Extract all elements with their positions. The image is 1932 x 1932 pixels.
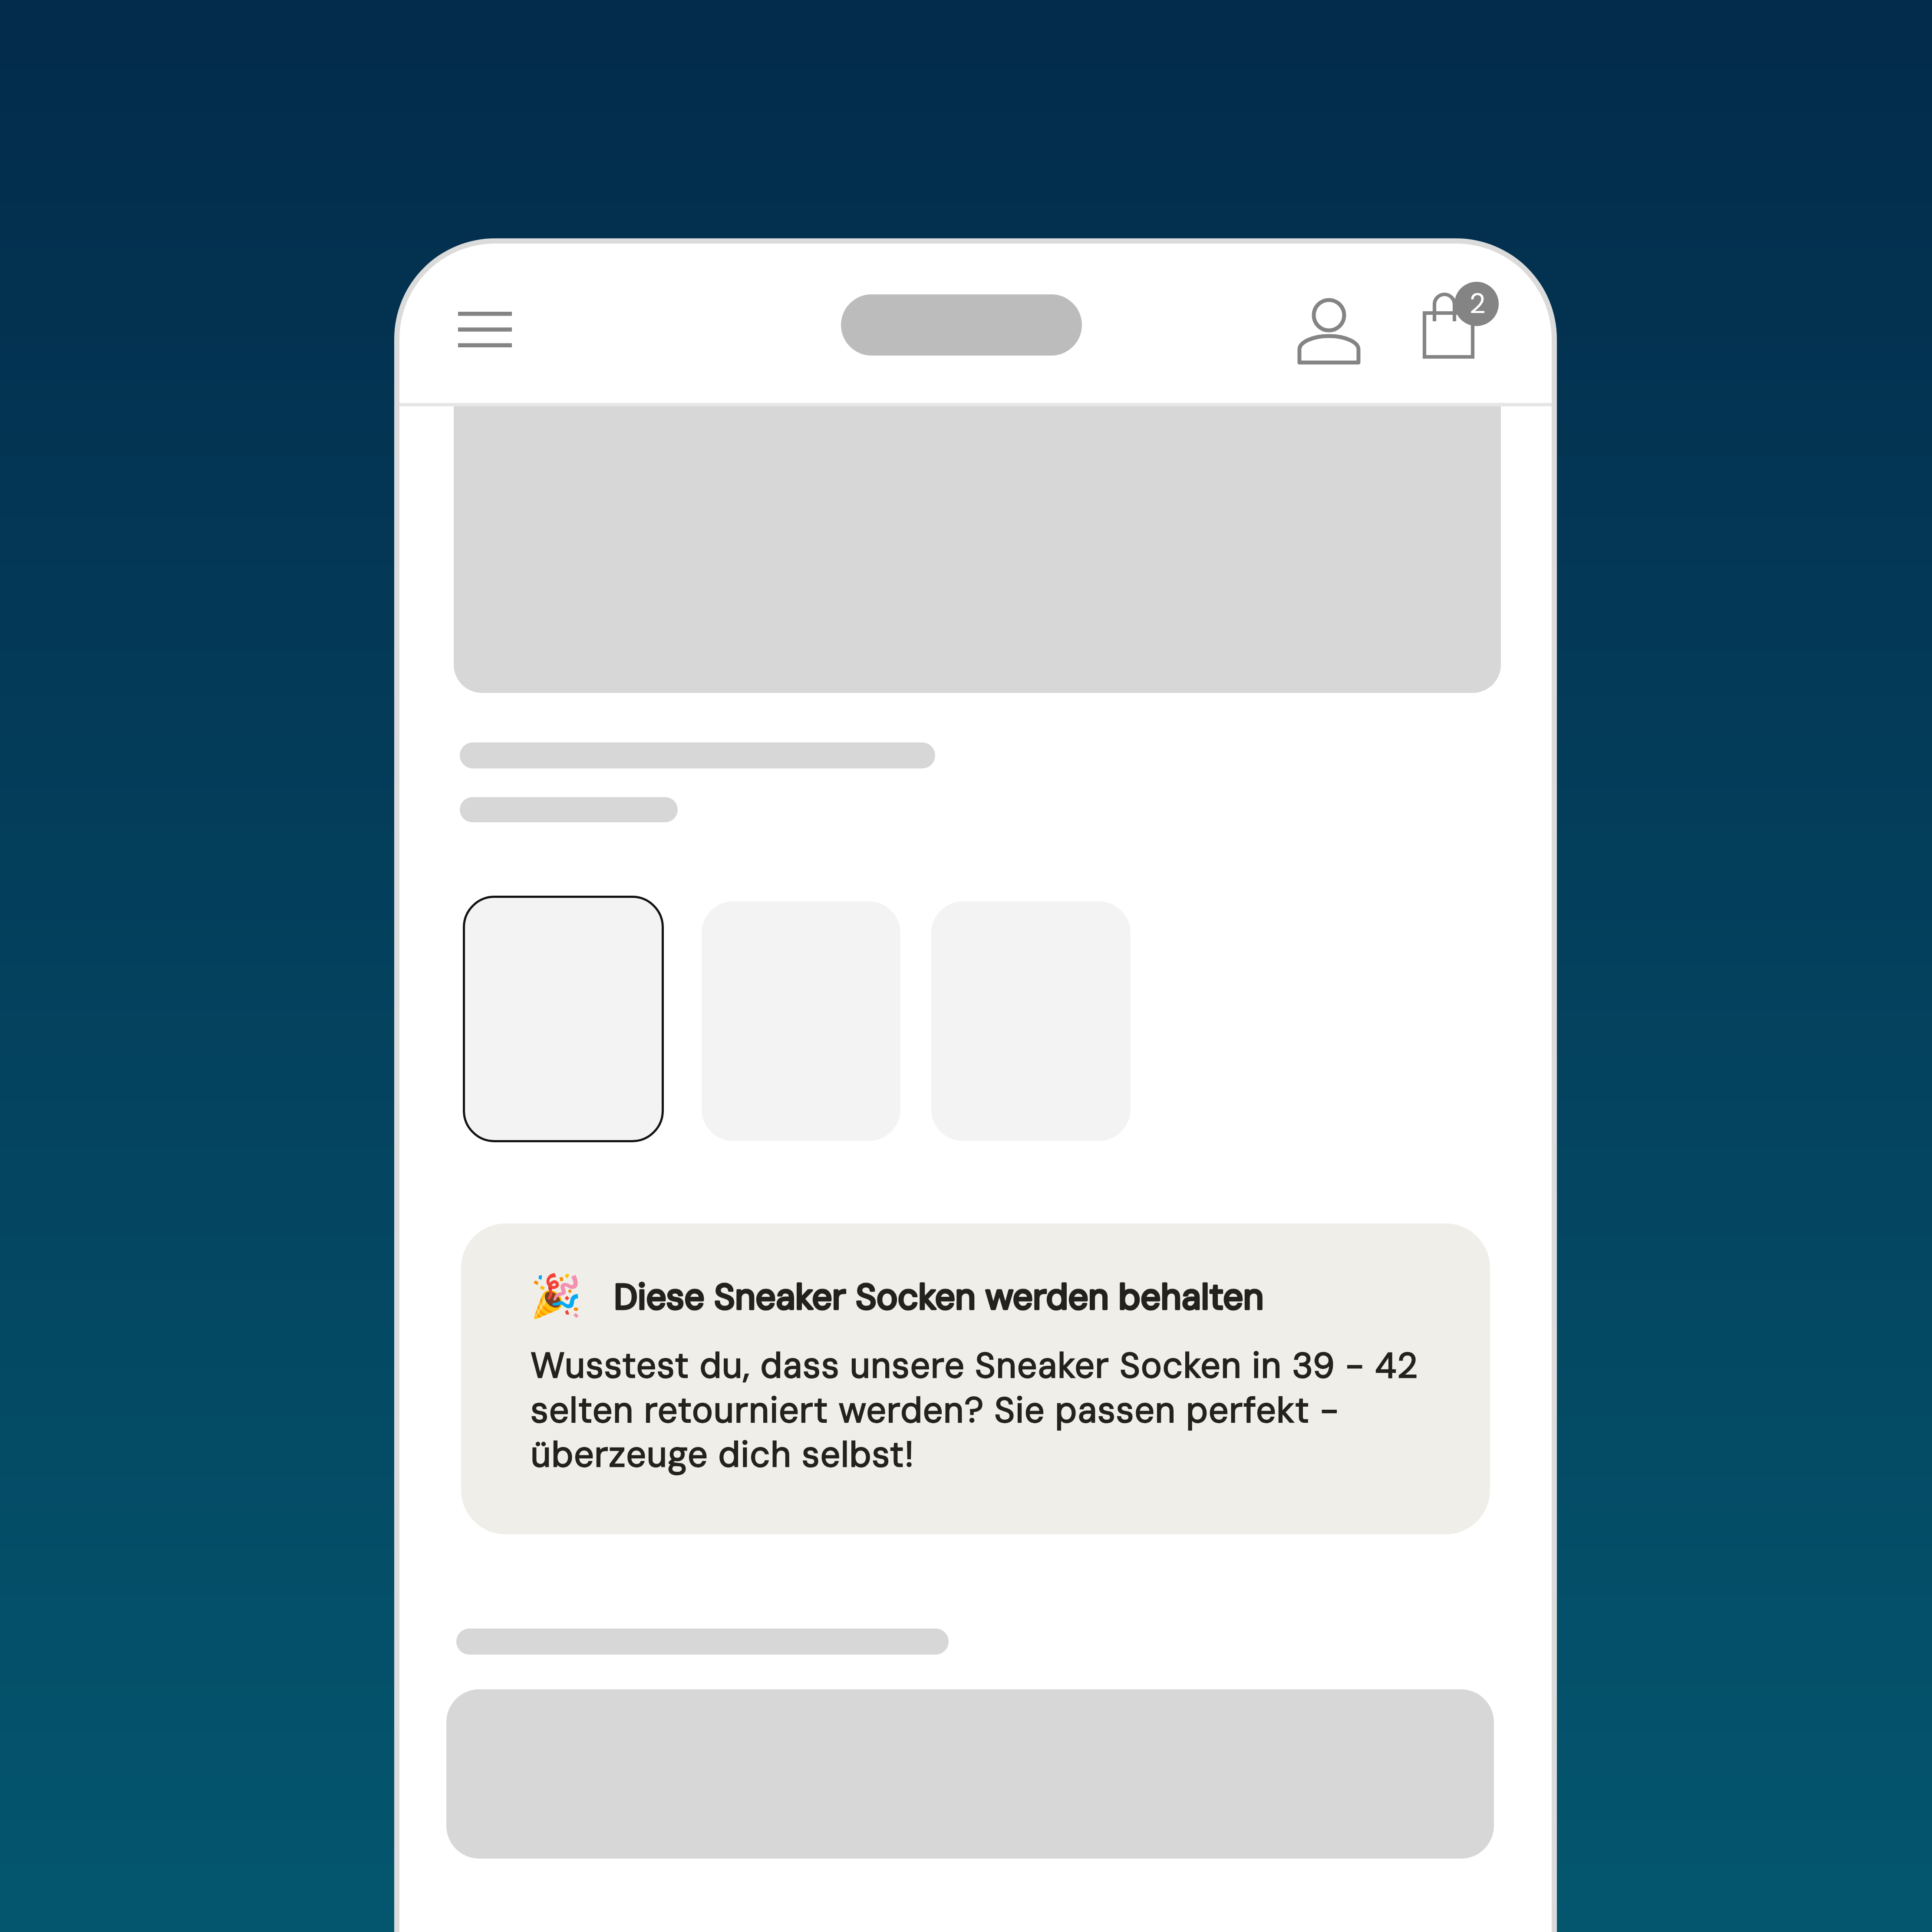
button[interactable]: 🎉: [461, 1223, 1490, 1534]
staticText: 🎉: [530, 1272, 582, 1321]
staticText: Diese Sneaker Socken werden behalten: [614, 1274, 1264, 1320]
button[interactable]: Shopping bag, 2 items: [1413, 278, 1507, 371]
button[interactable]: Add to cart: [446, 1689, 1494, 1859]
staticText: 2: [1460, 286, 1495, 322]
button[interactable]: Open menu: [449, 304, 521, 355]
button[interactable]: [463, 896, 664, 1142]
button[interactable]: Shop logo: [841, 294, 1082, 356]
staticText: Diese Sneaker Socken werden behalten: [614, 1274, 1264, 1320]
staticText: Wusstest du, dass unsere Sneaker Socken …: [531, 1343, 1460, 1477]
button[interactable]: Account: [1286, 287, 1372, 376]
